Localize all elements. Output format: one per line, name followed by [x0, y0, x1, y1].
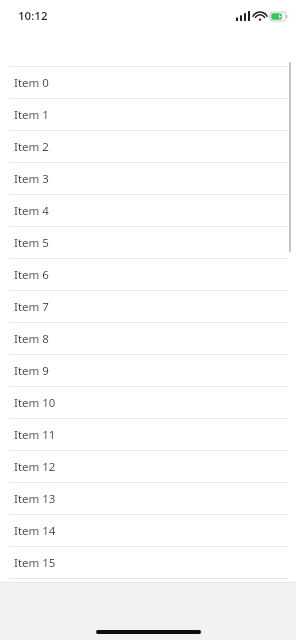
staticText: 10:12	[18, 8, 48, 24]
button[interactable]: Item 3	[0, 163, 296, 194]
button[interactable]: Item 10	[0, 387, 296, 418]
button[interactable]: Item 12	[0, 451, 296, 482]
button[interactable]: Item 15	[0, 547, 296, 578]
staticText: Item 7	[14, 299, 49, 315]
staticText: Item 15	[14, 555, 56, 571]
staticText: Item 8	[14, 331, 49, 347]
staticText: Item 10	[14, 395, 56, 411]
button[interactable]: Item 8	[0, 323, 296, 354]
staticText: Item 6	[14, 267, 49, 283]
button[interactable]: Item 13	[0, 483, 296, 514]
button[interactable]: Item 2	[0, 131, 296, 162]
staticText: Item 2	[14, 139, 49, 155]
staticText: Item 0	[14, 75, 49, 91]
staticText: Item 9	[14, 363, 49, 379]
staticText: Item 12	[14, 459, 56, 475]
other: Home indicator	[96, 630, 201, 634]
staticText: Item 5	[14, 235, 49, 251]
button[interactable]: Item 6	[0, 259, 296, 290]
staticText: Item 14	[14, 523, 56, 539]
button[interactable]: Item 5	[0, 227, 296, 258]
staticText: Item 1	[14, 107, 49, 123]
button[interactable]: Item 14	[0, 515, 296, 546]
button[interactable]: Item 7	[0, 291, 296, 322]
button[interactable]: Item 4	[0, 195, 296, 226]
button[interactable]: Item 1	[0, 99, 296, 130]
button[interactable]: Item 9	[0, 355, 296, 386]
button[interactable]: Item 0	[0, 67, 296, 98]
staticText: Item 11	[14, 427, 56, 443]
staticText: Item 3	[14, 171, 49, 187]
staticText: Item 13	[14, 491, 56, 507]
staticText: Item 4	[14, 203, 49, 219]
button[interactable]: Item 11	[0, 419, 296, 450]
